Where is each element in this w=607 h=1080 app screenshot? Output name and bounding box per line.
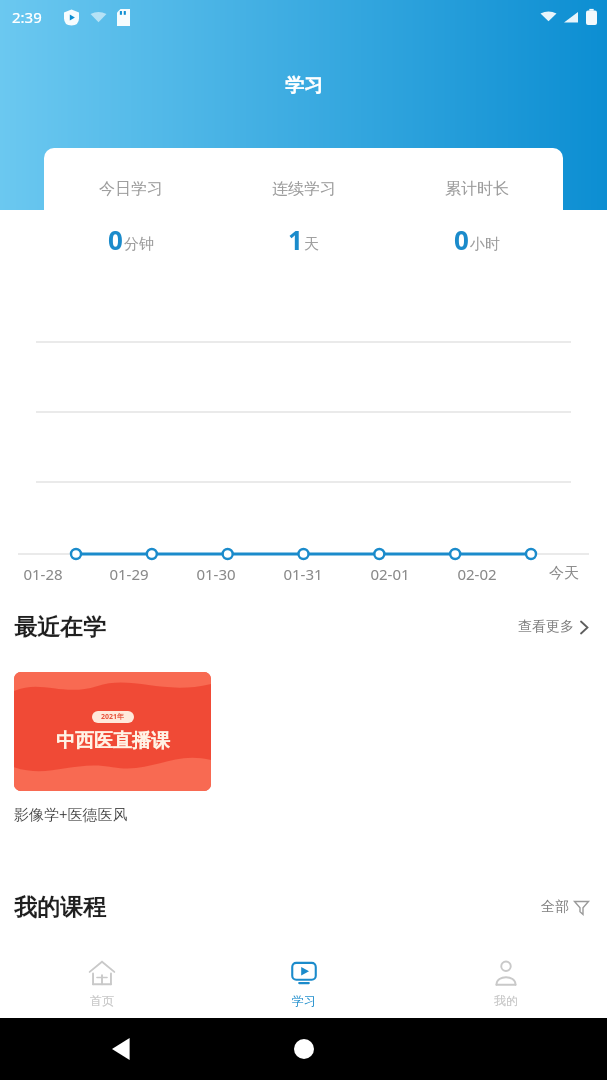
staticText: 01-29 [109, 564, 149, 584]
staticText: 0 [454, 222, 469, 257]
staticText: 02-02 [457, 564, 497, 584]
staticText: 查看更多 [518, 618, 574, 636]
staticText: 连续学习 [272, 179, 336, 199]
staticText: 01-30 [196, 564, 236, 584]
button[interactable]: 学习 [203, 948, 405, 1018]
button[interactable]: 全部 [537, 892, 593, 922]
staticText: 01-28 [23, 564, 63, 584]
staticText: 影像学+医德医风 [14, 804, 128, 824]
staticText: 最近在学 [14, 613, 106, 642]
other: Home [294, 1039, 314, 1059]
staticText: 首页 [90, 993, 114, 1008]
staticText: 累计时长 [445, 179, 509, 199]
staticText: 0 [108, 222, 123, 257]
staticText: 今天 [549, 564, 579, 583]
staticText: 天 [304, 235, 319, 254]
staticText: 我的课程 [14, 893, 106, 922]
staticText: 今日学习 [99, 179, 163, 199]
staticText: 学习 [292, 993, 316, 1008]
staticText: 分钟 [124, 235, 154, 254]
staticText: 我的 [494, 993, 518, 1008]
button[interactable]: 2021年 [14, 672, 211, 824]
button[interactable]: 查看更多 [514, 612, 593, 642]
staticText: 小时 [470, 235, 500, 254]
staticText: 学习 [285, 74, 323, 98]
staticText: 全部 [541, 898, 569, 916]
button[interactable]: 我的 [405, 948, 607, 1018]
staticText: 01-31 [283, 564, 323, 584]
button[interactable]: 今日学习 [44, 148, 563, 287]
button[interactable]: 首页 [0, 948, 203, 1018]
staticText: 2:39 [12, 7, 42, 27]
other: Back [112, 1038, 134, 1060]
staticText: 2021年 [101, 712, 125, 722]
staticText: 1 [288, 222, 303, 257]
staticText: 中西医直播课 [56, 729, 170, 753]
staticText: 02-01 [370, 564, 410, 584]
